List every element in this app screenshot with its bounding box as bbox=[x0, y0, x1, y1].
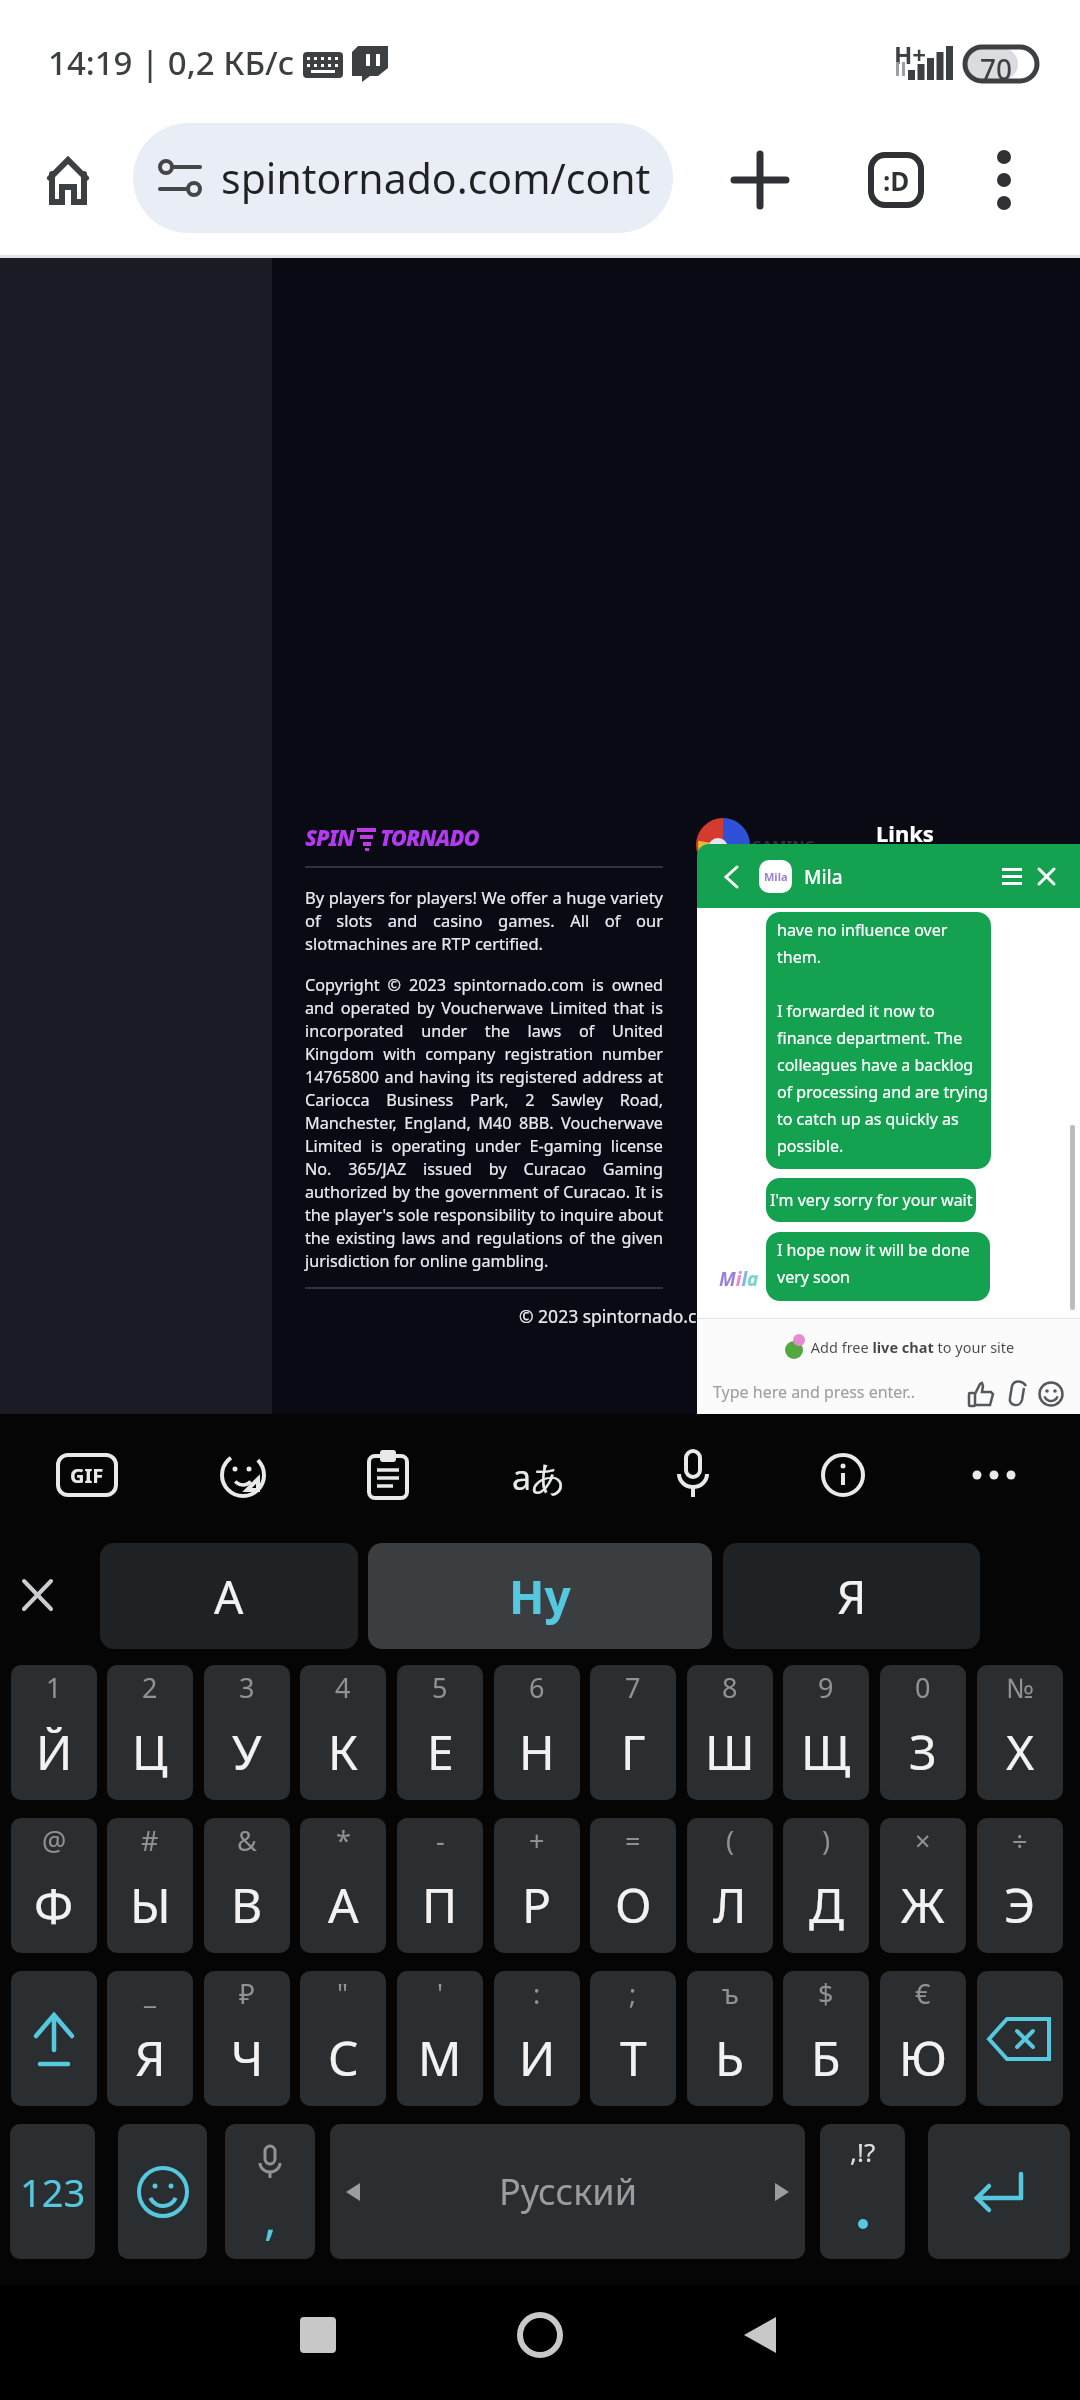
staticText: Б bbox=[811, 2025, 841, 2090]
button[interactable] bbox=[300, 2317, 336, 2353]
staticText: ; bbox=[629, 1975, 637, 2012]
staticText: О bbox=[615, 1872, 652, 1937]
button[interactable] bbox=[972, 144, 1036, 216]
button[interactable]: spintornado.com/cont bbox=[133, 123, 673, 233]
button[interactable]: × bbox=[880, 1818, 966, 1953]
button[interactable]: № bbox=[977, 1665, 1063, 1800]
staticText: З bbox=[909, 1719, 937, 1784]
staticText: Ну bbox=[509, 1565, 571, 1628]
button[interactable]: Я bbox=[723, 1543, 980, 1649]
button[interactable] bbox=[30, 142, 106, 218]
button[interactable]: , bbox=[225, 2124, 315, 2259]
button[interactable]: : bbox=[494, 1971, 580, 2106]
button[interactable] bbox=[977, 1971, 1063, 2106]
button[interactable]: # bbox=[107, 1818, 193, 1953]
button[interactable]: Type here and press enter.. bbox=[713, 1381, 915, 1403]
staticText: П bbox=[422, 1872, 458, 1937]
button[interactable]: 5 bbox=[397, 1665, 483, 1800]
button[interactable] bbox=[928, 2124, 1070, 2259]
staticText: ъ bbox=[722, 1975, 739, 2012]
staticText: С bbox=[328, 2025, 359, 2090]
staticText: TORNADO bbox=[380, 822, 479, 852]
button[interactable] bbox=[723, 866, 741, 888]
button[interactable]: 8 bbox=[687, 1665, 773, 1800]
staticText: × bbox=[915, 1822, 931, 1859]
staticText: Ц bbox=[132, 1719, 168, 1784]
button[interactable]: _ bbox=[107, 1971, 193, 2106]
button[interactable]: ₽ bbox=[204, 1971, 290, 2106]
button[interactable]: ,!? bbox=[820, 2124, 905, 2259]
staticText: @ bbox=[42, 1822, 67, 1859]
button[interactable] bbox=[1006, 1380, 1032, 1408]
button[interactable] bbox=[1002, 868, 1022, 885]
button[interactable]: - bbox=[397, 1818, 483, 1953]
button[interactable]: 3 bbox=[204, 1665, 290, 1800]
button[interactable] bbox=[1038, 868, 1055, 885]
button[interactable]: Русский bbox=[330, 2124, 805, 2259]
button[interactable]: $ bbox=[783, 1971, 869, 2106]
button[interactable] bbox=[820, 1452, 866, 1498]
staticText: © 2023 spintornado.com - bbox=[519, 1304, 734, 1328]
staticText: By players for players! We offer a huge … bbox=[305, 886, 663, 955]
staticText: Ь bbox=[715, 2025, 745, 2090]
button[interactable]: aあ bbox=[506, 1444, 576, 1500]
staticText: Я bbox=[837, 1565, 867, 1628]
staticText: 5 bbox=[432, 1669, 448, 1706]
button[interactable] bbox=[220, 1452, 266, 1498]
button[interactable]: + bbox=[494, 1818, 580, 1953]
button[interactable]: @ bbox=[11, 1818, 97, 1953]
staticText: 8 bbox=[722, 1669, 738, 1706]
button[interactable]: ; bbox=[590, 1971, 676, 2106]
button[interactable]: € bbox=[880, 1971, 966, 2106]
button[interactable] bbox=[11, 1971, 97, 2106]
button[interactable]: :D bbox=[860, 144, 932, 216]
staticText: 4 bbox=[335, 1669, 351, 1706]
staticText: spintornado.com/cont bbox=[221, 150, 651, 206]
button[interactable] bbox=[676, 1449, 710, 1501]
button[interactable]: А bbox=[100, 1543, 358, 1649]
staticText: Р bbox=[522, 1872, 552, 1937]
button[interactable]: 123 bbox=[10, 2124, 95, 2259]
button[interactable] bbox=[969, 1381, 995, 1407]
button[interactable]: ) bbox=[783, 1818, 869, 1953]
button[interactable] bbox=[118, 2124, 207, 2259]
button[interactable] bbox=[724, 144, 796, 216]
staticText: Г bbox=[621, 1719, 646, 1784]
staticText: Ж bbox=[901, 1872, 945, 1937]
button[interactable]: 7 bbox=[590, 1665, 676, 1800]
staticText: Copyright © 2023 spintornado.com is owne… bbox=[305, 974, 663, 1272]
button[interactable]: 0 bbox=[880, 1665, 966, 1800]
staticText: Mila bbox=[804, 864, 843, 890]
button[interactable] bbox=[514, 2309, 566, 2361]
button[interactable]: ' bbox=[397, 1971, 483, 2106]
button[interactable]: ъ bbox=[687, 1971, 773, 2106]
button[interactable]: " bbox=[300, 1971, 386, 2106]
button[interactable] bbox=[1038, 1381, 1064, 1407]
button[interactable]: * bbox=[300, 1818, 386, 1953]
button[interactable] bbox=[738, 2313, 782, 2357]
button[interactable]: Ну bbox=[368, 1543, 712, 1649]
staticText: Э bbox=[1004, 1872, 1036, 1937]
staticText: Ы bbox=[130, 1872, 171, 1937]
button[interactable]: = bbox=[590, 1818, 676, 1953]
button[interactable]: 4 bbox=[300, 1665, 386, 1800]
button[interactable] bbox=[972, 1470, 1016, 1480]
button[interactable] bbox=[20, 1573, 56, 1619]
staticText: В bbox=[231, 1872, 263, 1937]
staticText: К bbox=[328, 1719, 359, 1784]
button[interactable]: ( bbox=[687, 1818, 773, 1953]
button[interactable]: & bbox=[204, 1818, 290, 1953]
staticText: 1 bbox=[46, 1669, 62, 1706]
button[interactable]: 1 bbox=[11, 1665, 97, 1800]
button[interactable]: 2 bbox=[107, 1665, 193, 1800]
button[interactable]: 6 bbox=[494, 1665, 580, 1800]
button[interactable]: 9 bbox=[783, 1665, 869, 1800]
staticText: А bbox=[214, 1565, 244, 1628]
staticText: 123 bbox=[20, 2166, 86, 2218]
button[interactable]: GIF bbox=[56, 1453, 118, 1497]
button[interactable] bbox=[367, 1450, 409, 1500]
button[interactable]: ÷ bbox=[977, 1818, 1063, 1953]
staticText: € bbox=[915, 1975, 931, 2012]
staticText: Ш bbox=[705, 1719, 755, 1784]
staticText: Д bbox=[809, 1872, 844, 1937]
